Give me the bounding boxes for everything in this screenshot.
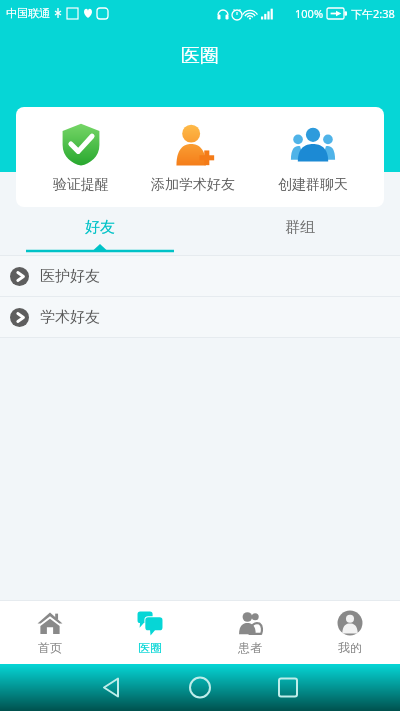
button[interactable]: 医圈 — [100, 601, 200, 664]
staticText: 患者 — [238, 640, 262, 655]
staticText: 医护好友 — [40, 267, 100, 286]
button[interactable]: 好友 — [0, 207, 200, 255]
staticText: 好友 — [85, 218, 115, 237]
staticText: 100% — [295, 6, 324, 21]
button[interactable]: 群组 — [200, 207, 400, 255]
button[interactable]: 医护好友 — [0, 256, 400, 296]
button[interactable]: 我的 — [300, 601, 400, 664]
staticText: 学术好友 — [40, 308, 100, 327]
button[interactable]: 患者 — [200, 601, 300, 664]
staticText: 医圈 — [181, 44, 219, 68]
staticText: 验证提醒 — [53, 176, 109, 194]
other: 医圈 — [137, 610, 163, 636]
staticText: 我的 — [338, 640, 362, 655]
staticText: 中国联通 — [6, 6, 50, 20]
other: 首页 — [37, 610, 63, 636]
staticText: 首页 — [38, 640, 62, 655]
other: 添加学术好友 — [170, 121, 216, 167]
staticText: 医圈 — [138, 640, 162, 655]
button[interactable]: 创建群聊天 — [272, 115, 354, 200]
other: 验证提醒 — [58, 121, 104, 167]
button[interactable]: 验证提醒 — [47, 115, 115, 200]
staticText: 下午2:38 — [351, 6, 395, 21]
button[interactable]: 首页 — [0, 601, 100, 664]
staticText: 群组 — [285, 218, 315, 237]
button[interactable]: 添加学术好友 — [145, 115, 241, 200]
button[interactable]: 学术好友 — [0, 297, 400, 337]
staticText: 添加学术好友 — [151, 176, 235, 194]
other: 创建群聊天 — [290, 121, 336, 167]
other: 患者 — [237, 610, 263, 636]
other: 我的 — [337, 610, 363, 636]
staticText: 创建群聊天 — [278, 176, 348, 194]
